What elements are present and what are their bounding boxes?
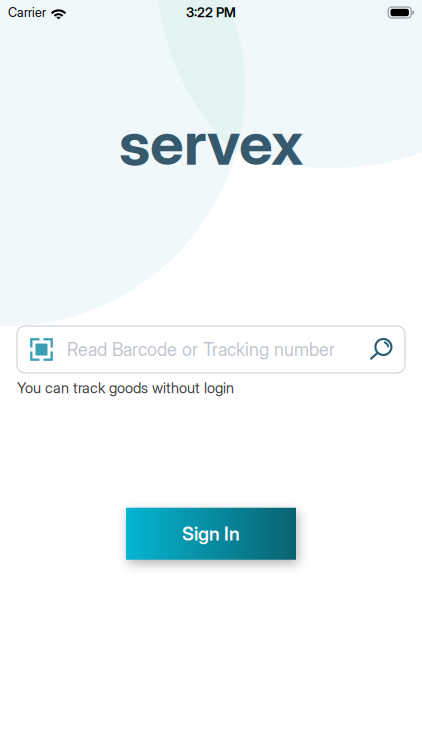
staticText: Carrier: [8, 5, 46, 20]
staticText: Read Barcode or Tracking number: [67, 339, 335, 360]
button[interactable]: Search: [369, 338, 405, 361]
button[interactable]: Sign In: [126, 508, 296, 560]
staticText: You can track goods without login: [17, 379, 234, 397]
staticText: Sign In: [182, 522, 240, 545]
staticText: 3:22 PM: [186, 4, 236, 20]
staticText: servex: [119, 107, 303, 179]
